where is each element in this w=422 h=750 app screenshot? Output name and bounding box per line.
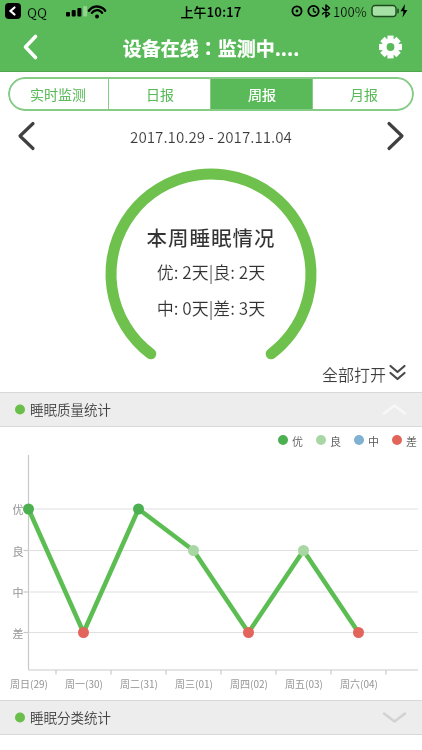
staticText: 差: [406, 433, 417, 447]
staticText: 周三(01): [166, 676, 222, 690]
staticText: 睡眠质量统计: [30, 399, 111, 419]
staticText: 优: [292, 433, 303, 447]
staticText: 100%: [333, 2, 367, 21]
staticText: 中: [10, 584, 26, 600]
staticText: 2017.10.29 - 2017.11.04: [0, 126, 422, 148]
staticText: 睡眠分类统计: [30, 707, 111, 727]
staticText: 周四(02): [221, 676, 277, 690]
staticText: 月报: [350, 84, 378, 104]
button[interactable]: [8, 113, 46, 159]
staticText: 周六(04): [331, 676, 387, 690]
staticText: 全部打开: [322, 362, 387, 385]
staticText: 优: 2天|良: 2天: [0, 259, 422, 284]
staticText: 差: [10, 625, 26, 641]
staticText: 优: [10, 501, 26, 517]
staticText: 周一(30): [56, 676, 112, 690]
button[interactable]: 月报: [313, 77, 414, 111]
staticText: 周报: [248, 84, 276, 104]
staticText: 周二(31): [111, 676, 167, 690]
staticText: QQ: [27, 2, 48, 22]
staticText: 周五(03): [276, 676, 332, 690]
button[interactable]: 全部打开: [260, 360, 422, 386]
staticText: 日报: [146, 84, 174, 104]
staticText: 设备在线：监测中....: [0, 34, 422, 62]
staticText: 本周睡眠情况: [0, 222, 422, 252]
button[interactable]: [369, 25, 413, 69]
staticText: 中: 0天|差: 3天: [0, 295, 422, 320]
button[interactable]: [8, 22, 52, 72]
button[interactable]: 日报: [109, 77, 210, 111]
button[interactable]: 周报: [211, 77, 312, 111]
staticText: 良: [10, 543, 26, 559]
staticText: 中: [368, 433, 379, 447]
staticText: 实时监测: [30, 84, 86, 104]
button[interactable]: [376, 113, 414, 159]
button[interactable]: 实时监测: [8, 77, 108, 111]
staticText: 良: [330, 433, 341, 447]
button[interactable]: 睡眠质量统计: [0, 392, 422, 427]
staticText: 周日(29): [1, 676, 57, 690]
staticText: 上午10:17: [0, 2, 422, 21]
button[interactable]: 睡眠分类统计: [0, 700, 422, 735]
